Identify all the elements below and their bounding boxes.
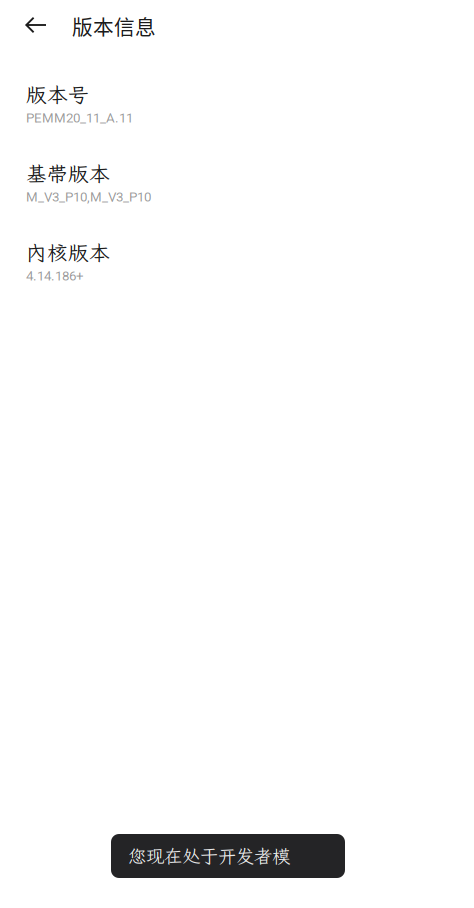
button[interactable]: Back bbox=[14, 3, 58, 47]
staticText: 您现在处于开发者模 bbox=[128, 844, 290, 868]
staticText: 版本信息 bbox=[72, 11, 156, 41]
staticText: M_V3_P10,M_V3_P10 bbox=[26, 189, 151, 205]
staticText: 4.14.186+ bbox=[26, 268, 84, 284]
staticText: 基带版本 bbox=[26, 160, 110, 187]
staticText: 版本号 bbox=[26, 81, 89, 108]
staticText: PEMM20_11_A.11 bbox=[26, 110, 133, 126]
staticText: 内核版本 bbox=[26, 239, 110, 266]
